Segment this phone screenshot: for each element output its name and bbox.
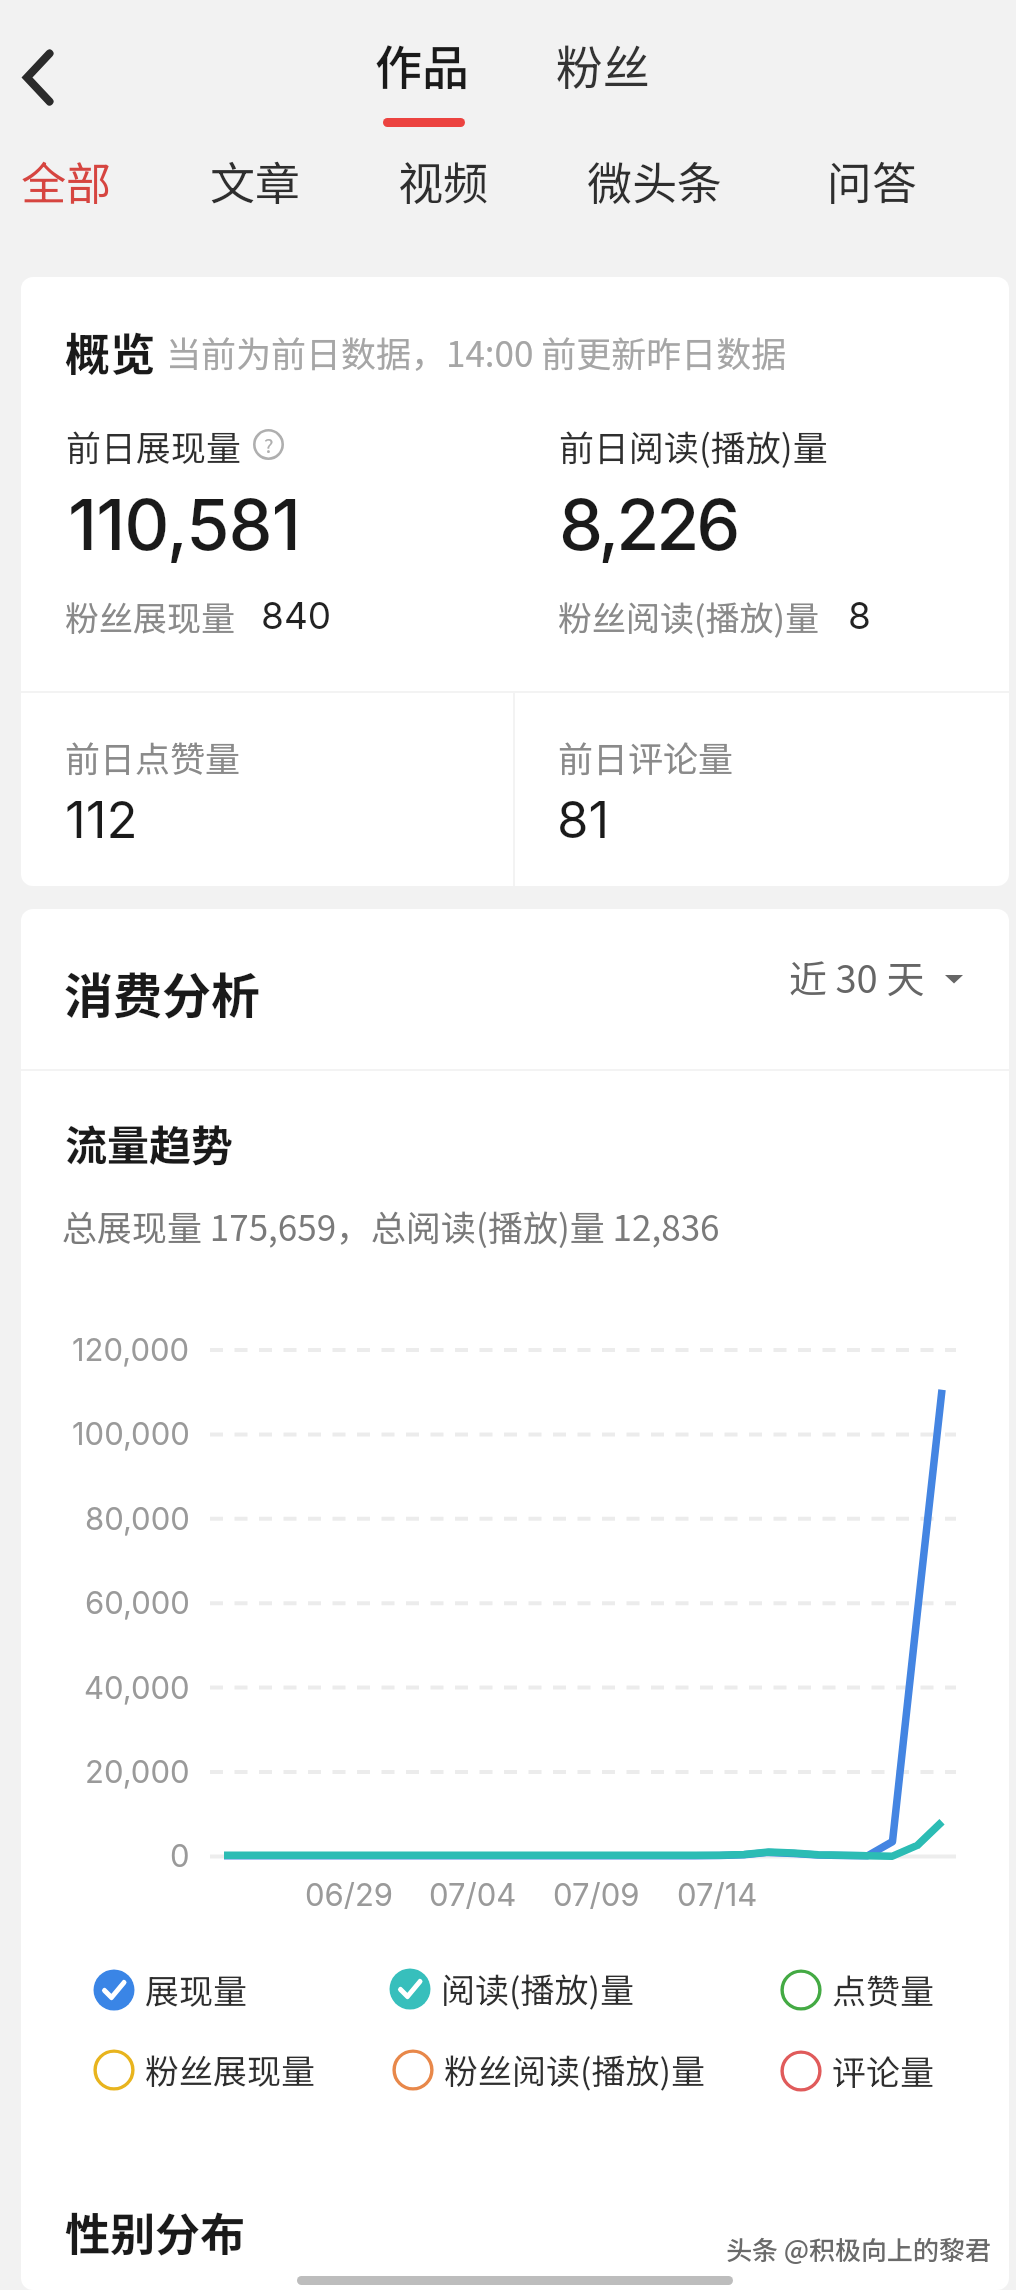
button[interactable]: 阅读(播放)量 [386,1955,634,2021]
staticText: 前日阅读(播放)量 [559,420,828,471]
staticText: 07/04 [429,1876,517,1914]
staticText: ? [264,430,274,459]
staticText: 07/09 [553,1876,640,1914]
button[interactable]: 近 30 天 [789,930,984,1023]
staticText: 展现量 [145,1965,247,2014]
button[interactable]: 点赞量 [777,1956,934,2022]
staticText: 作品 [375,30,469,98]
staticText: 前日评论量 [558,731,734,782]
staticText: 粉丝阅读(播放)量 [558,592,819,641]
staticText: 20,000 [85,1753,190,1791]
staticText: 评论量 [832,2046,934,2095]
staticText: 100,000 [72,1415,190,1453]
button[interactable]: 粉丝 [535,8,671,132]
staticText: 头条 @积极向上的黎君 [726,2230,992,2268]
button[interactable]: 文章 [194,132,317,228]
button[interactable]: 作品 [356,8,488,132]
staticText: 60,000 [85,1584,190,1622]
button[interactable]: 微头条 [571,132,739,228]
staticText: 07/14 [677,1876,758,1914]
staticText: 110,581 [68,482,300,567]
staticText: 流量趋势 [65,1112,234,1173]
staticText: 概览 [65,319,156,384]
staticText: 120,000 [72,1331,190,1369]
staticText: 微头条 [587,148,723,213]
staticText: 当前为前日数据，14:00 前更新昨日数据 [166,326,787,377]
staticText: 总展现量 175,659，总阅读(播放)量 12,836 [62,1200,720,1251]
staticText: 8 [848,593,871,638]
staticText: 前日点赞量 [65,731,241,782]
staticText: 粉丝展现量 [65,592,235,641]
staticText: 消费分析 [64,957,261,1028]
button[interactable]: 评论量 [777,2037,934,2103]
staticText: 40,000 [84,1669,190,1707]
button[interactable]: 粉丝阅读(播放)量 [389,2036,705,2102]
staticText: 112 [65,789,138,851]
staticText: 06/29 [305,1876,394,1914]
staticText: 头条 @积极向上的黎君 [728,2231,994,2269]
button[interactable]: 问答 [811,132,934,228]
staticText: 全部 [21,148,112,213]
staticText: 粉丝阅读(播放)量 [444,2045,705,2094]
staticText: 近 30 天 [789,949,925,1004]
staticText: 问答 [827,148,918,213]
button[interactable]: 视频 [382,132,505,228]
staticText: 点赞量 [832,1965,934,2014]
staticText: 0 [170,1837,190,1875]
button[interactable]: 全部 [5,132,128,228]
staticText: 81 [557,789,610,851]
staticText: 粉丝展现量 [145,2045,315,2094]
staticText: 阅读(播放)量 [441,1964,634,2013]
staticText: 粉丝 [556,30,650,98]
staticText: 前日展现量 [66,420,242,471]
staticText: 文章 [210,148,301,213]
button[interactable]: 粉丝展现量 [90,2036,315,2102]
staticText: 8,226 [559,482,738,567]
staticText: 840 [261,593,332,638]
staticText: 性别分布 [65,2199,246,2264]
staticText: 80,000 [85,1500,190,1538]
button[interactable]: Back [0,26,104,130]
staticText: 视频 [398,148,489,213]
button[interactable]: 展现量 [90,1956,247,2022]
